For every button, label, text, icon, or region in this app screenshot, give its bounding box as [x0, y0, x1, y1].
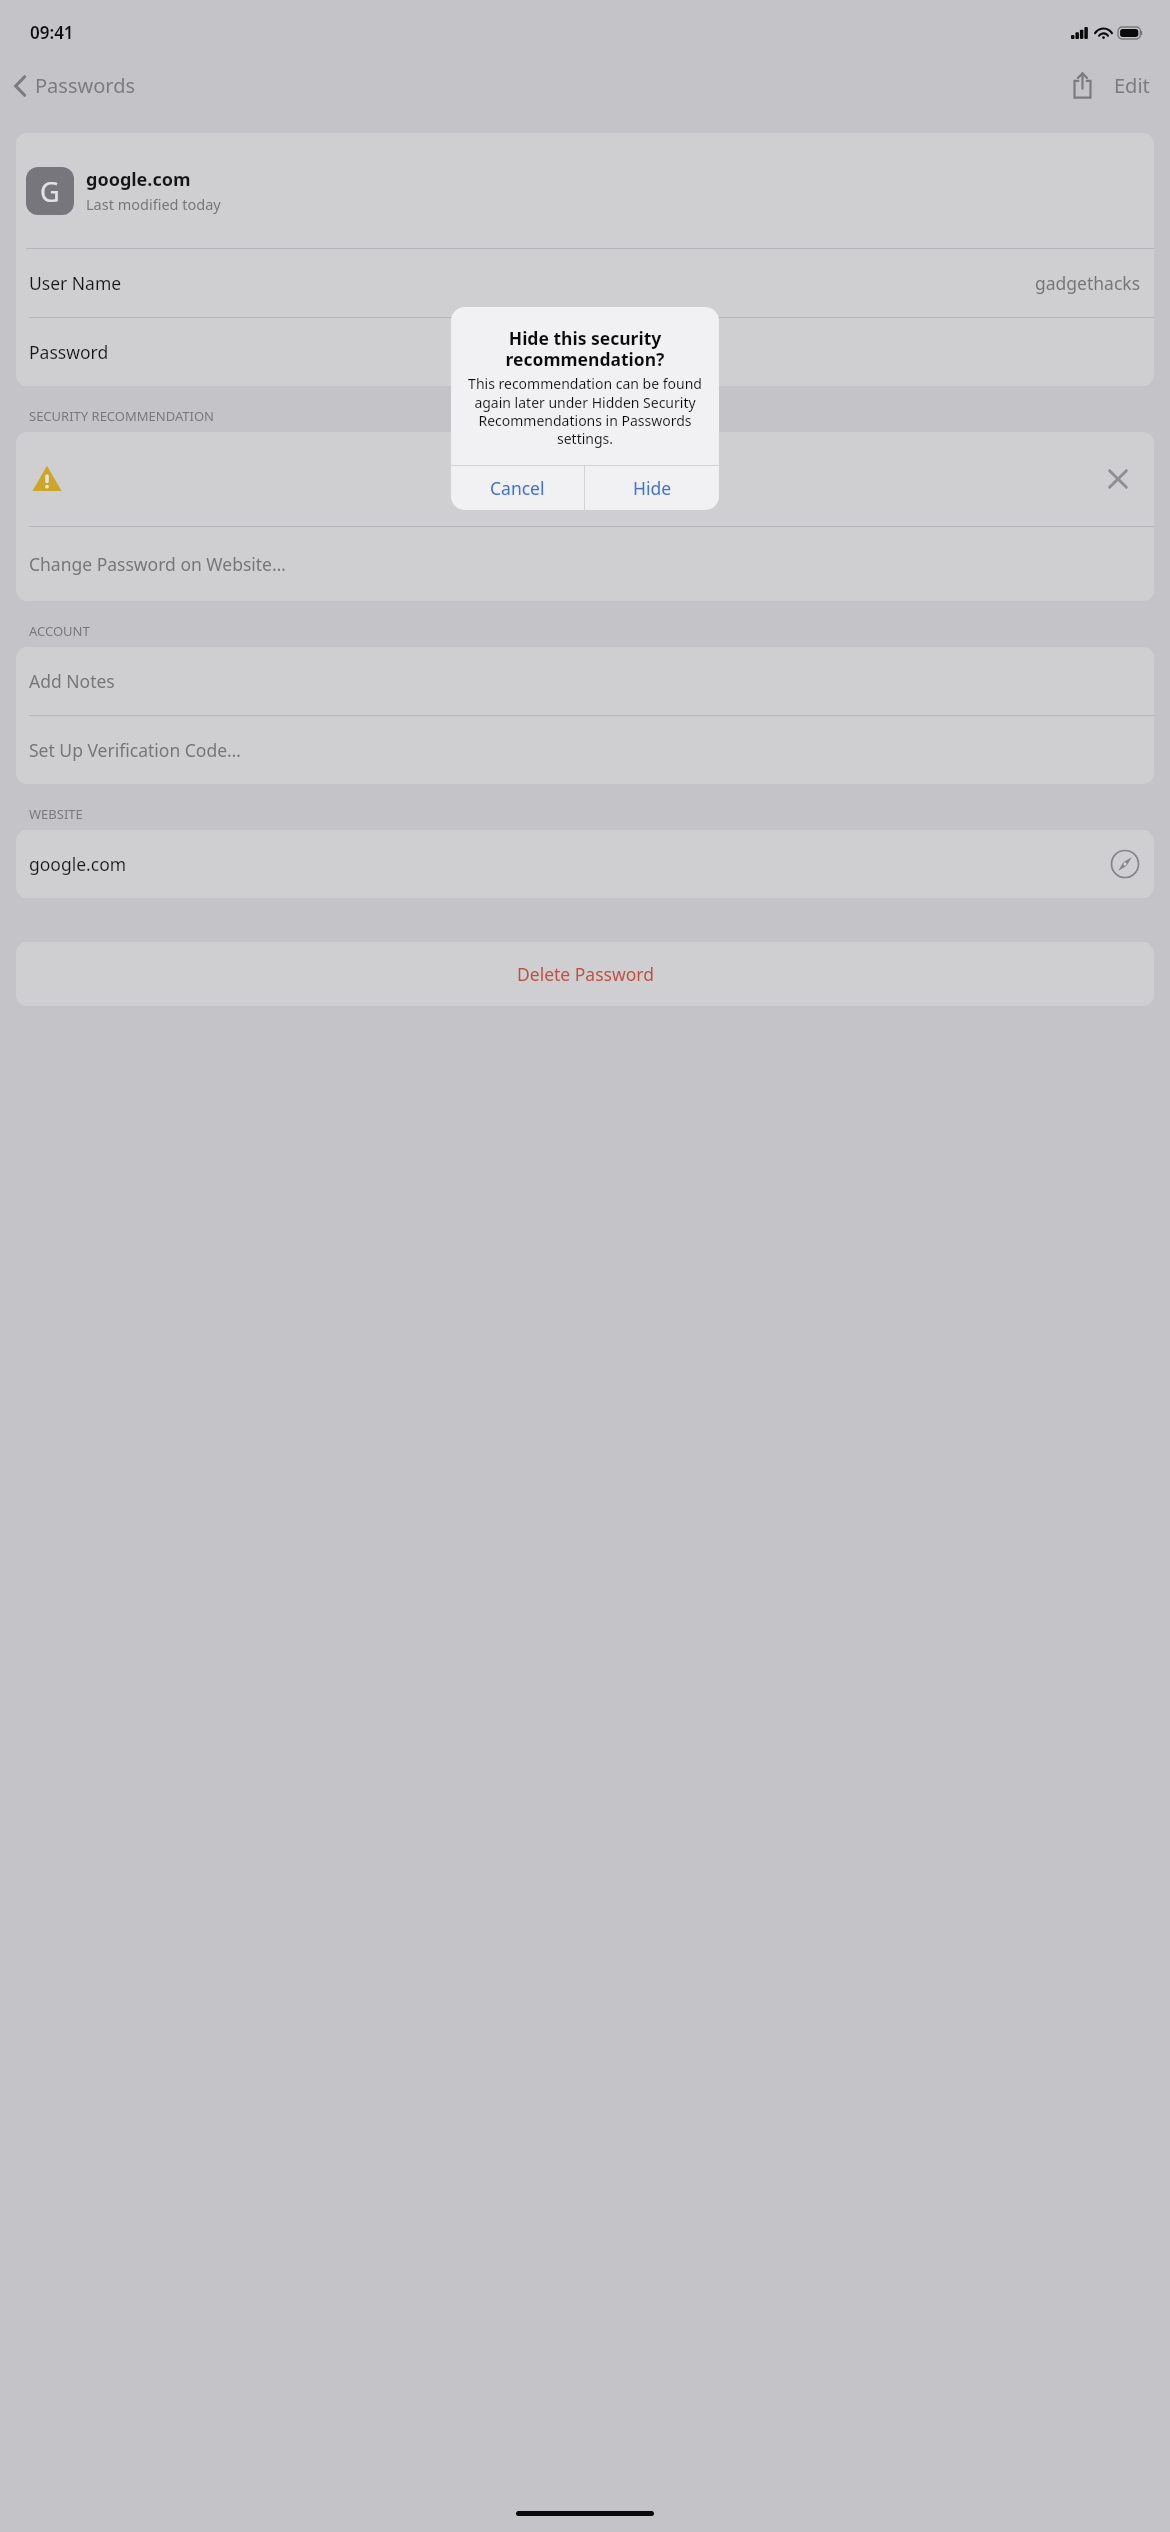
button[interactable]: Delete Password	[16, 942, 1154, 1006]
button[interactable]: Change Password on Website…	[16, 527, 1154, 601]
button[interactable]: G	[16, 133, 1154, 248]
staticText: Edit	[1114, 72, 1150, 99]
button[interactable]: Share	[1062, 65, 1102, 105]
staticText: Hide	[633, 476, 672, 500]
staticText: Last modified today	[86, 194, 221, 214]
staticText: Add Notes	[29, 669, 115, 693]
staticText: Change Password on Website…	[29, 552, 286, 576]
staticText: gadgethacks	[1035, 271, 1141, 295]
staticText: 09:41	[30, 21, 74, 44]
staticText: Passwords	[35, 72, 136, 99]
staticText: WEBSITE	[29, 805, 83, 823]
button[interactable]: Cancel	[451, 466, 584, 510]
staticText: ACCOUNT	[29, 622, 90, 640]
button[interactable]: Dismiss recommendation	[1098, 459, 1138, 499]
staticText: User Name	[29, 271, 122, 295]
staticText: Password	[29, 340, 109, 364]
staticText: google.com	[86, 167, 191, 192]
button[interactable]: Edit	[1110, 66, 1154, 105]
button[interactable]: Set Up Verification Code…	[16, 716, 1154, 784]
staticText: This recommendation can be found again l…	[467, 374, 703, 448]
button[interactable]: User Name	[16, 249, 1154, 317]
staticText: SECURITY RECOMMENDATION	[29, 407, 214, 425]
other: Open in Safari	[1109, 848, 1141, 880]
staticText: G	[40, 173, 60, 210]
button[interactable]: Passwords	[8, 68, 142, 103]
staticText: google.com	[29, 852, 127, 876]
button[interactable]: Add Notes	[16, 647, 1154, 715]
staticText: Delete Password	[517, 962, 654, 986]
staticText: Set Up Verification Code…	[29, 738, 241, 762]
button[interactable]: Hide	[585, 466, 719, 510]
staticText: Cancel	[490, 476, 545, 500]
button[interactable]: google.com	[16, 830, 1154, 898]
button[interactable]: Password	[16, 318, 1154, 386]
staticText: Hide this security recommendation?	[467, 326, 703, 371]
